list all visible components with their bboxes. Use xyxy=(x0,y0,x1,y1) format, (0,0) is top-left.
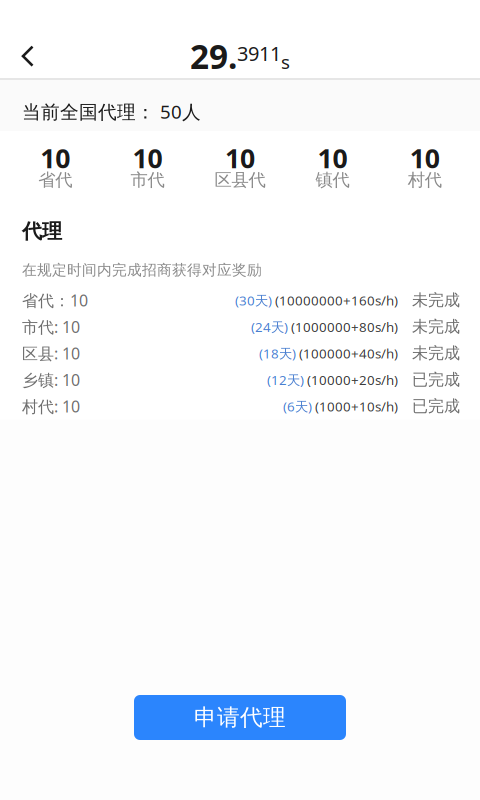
staticText: (10000000+160s/h) xyxy=(272,291,398,309)
staticText: 镇代 xyxy=(315,169,349,191)
staticText: (18天) xyxy=(259,344,296,362)
staticText: 10 xyxy=(133,140,163,176)
staticText: 未完成 xyxy=(412,290,460,310)
staticText: 村代: 10 xyxy=(22,396,80,417)
staticText: 区县: 10 xyxy=(22,343,80,364)
staticText: 29.3911s xyxy=(190,34,290,78)
staticText: 市代 xyxy=(131,169,165,191)
staticText: 当前全国代理： 50人 xyxy=(22,99,201,124)
staticText: 市代: 10 xyxy=(22,316,80,337)
staticText: (1000000+80s/h) xyxy=(288,318,398,336)
staticText: 省代 xyxy=(38,169,72,191)
staticText: (10000+20s/h) xyxy=(304,371,398,389)
staticText: 省代：10 xyxy=(22,290,88,311)
staticText: 未完成 xyxy=(412,343,460,363)
button[interactable]: 返回 xyxy=(7,34,49,78)
staticText: (30天) xyxy=(235,291,272,309)
staticText: 已完成 xyxy=(412,370,460,390)
staticText: 10 xyxy=(40,140,70,176)
staticText: 在规定时间内完成招商获得对应奖励 xyxy=(22,261,262,279)
staticText: (24天) xyxy=(251,318,288,336)
staticText: 乡镇: 10 xyxy=(22,369,80,390)
staticText: 10 xyxy=(410,140,440,176)
staticText: 区县代 xyxy=(214,169,265,191)
staticText: 未完成 xyxy=(412,317,460,337)
staticText: 申请代理 xyxy=(194,704,286,731)
staticText: (6天) xyxy=(283,397,312,415)
staticText: (1000+10s/h) xyxy=(312,397,398,415)
staticText: (12天) xyxy=(267,371,304,389)
staticText: 代理 xyxy=(22,219,62,244)
staticText: (100000+40s/h) xyxy=(296,344,398,362)
staticText: 已完成 xyxy=(412,396,460,416)
staticText: 10 xyxy=(225,140,255,176)
staticText: 村代 xyxy=(408,169,442,191)
staticText: 10 xyxy=(317,140,347,176)
button[interactable]: 申请代理 xyxy=(134,695,346,740)
